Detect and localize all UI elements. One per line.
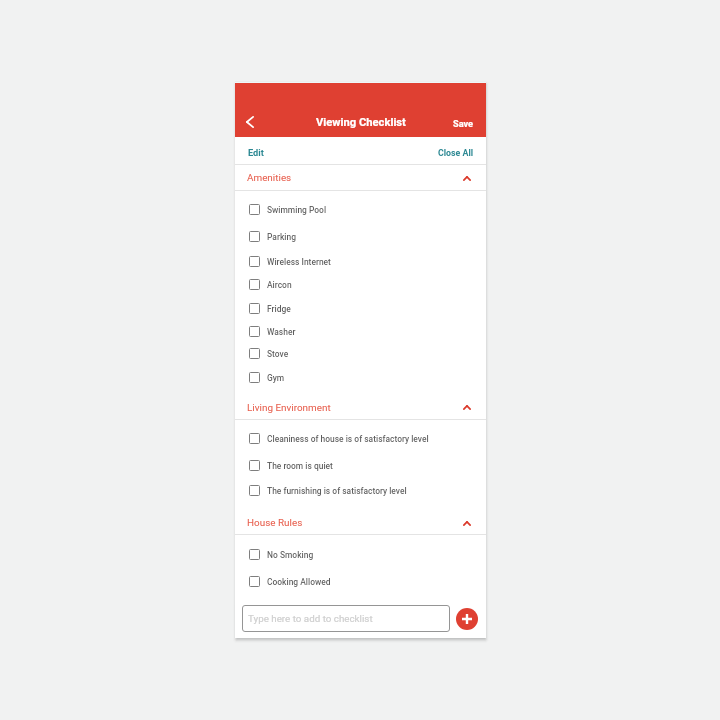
button[interactable]: Type here to add to checklist	[242, 605, 450, 632]
button[interactable]: Washer	[235, 320, 486, 342]
staticText: Parking	[267, 232, 296, 242]
button[interactable]: House Rules	[235, 509, 486, 535]
button[interactable]: Save	[447, 115, 480, 132]
staticText: Amenities	[247, 172, 292, 184]
button[interactable]: Gym	[235, 366, 486, 388]
button[interactable]: Close All	[433, 143, 479, 163]
button[interactable]: Stove	[235, 342, 486, 364]
staticText: Type here to add to checklist	[248, 613, 373, 624]
button[interactable]: Amenities	[235, 165, 486, 191]
button[interactable]: Wireless Internet	[235, 250, 486, 272]
button[interactable]: Aircon	[235, 273, 486, 295]
button[interactable]: Fridge	[235, 297, 486, 319]
staticText: Fridge	[267, 304, 291, 314]
button[interactable]: Swimming Pool	[235, 198, 486, 220]
button[interactable]: Parking	[235, 225, 486, 247]
staticText: Wireless Internet	[267, 257, 331, 267]
staticText: No Smoking	[267, 550, 314, 560]
staticText: Cleaniness of house is of satisfactory l…	[267, 434, 429, 444]
staticText: Stove	[267, 349, 289, 359]
staticText: Close All	[438, 148, 474, 158]
button[interactable]: Add item	[456, 608, 478, 630]
staticText: Edit	[248, 147, 264, 158]
staticText: Cooking Allowed	[267, 577, 331, 587]
staticText: Save	[453, 118, 474, 129]
staticText: House Rules	[247, 517, 303, 529]
staticText: Swimming Pool	[267, 205, 327, 215]
button[interactable]: Cooking Allowed	[235, 570, 486, 592]
button[interactable]: The room is quiet	[235, 454, 486, 476]
staticText: Washer	[267, 327, 296, 337]
button[interactable]: No Smoking	[235, 543, 486, 565]
button[interactable]: Living Environment	[235, 393, 486, 420]
button[interactable]: Back	[241, 113, 259, 131]
staticText: Aircon	[267, 280, 292, 290]
staticText: Gym	[267, 373, 285, 383]
button[interactable]: The furnishing is of satisfactory level	[235, 479, 486, 501]
staticText: The room is quiet	[267, 461, 333, 471]
staticText: Living Environment	[247, 402, 331, 414]
button[interactable]: Edit	[243, 142, 269, 163]
staticText: Viewing Checklist	[316, 116, 406, 129]
staticText: The furnishing is of satisfactory level	[267, 486, 407, 496]
button[interactable]: Cleaniness of house is of satisfactory l…	[235, 427, 486, 449]
